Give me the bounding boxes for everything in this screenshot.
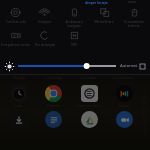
button[interactable]: MirrorShare [89, 7, 119, 24]
button[interactable]: Drive [74, 111, 104, 128]
button[interactable]: Nu deranjaţi [30, 30, 59, 47]
staticText: Confort ochi [6, 19, 26, 24]
button[interactable]: Documente [38, 111, 68, 128]
other: Economisire baterie [129, 7, 140, 18]
staticText: Economisire baterie [119, 19, 149, 28]
button[interactable]: Chrome [38, 85, 68, 108]
other: NFC [69, 30, 80, 41]
button[interactable]: Descărcări [3, 111, 33, 128]
staticText: Automat [120, 63, 138, 69]
staticText: Cameră foto [108, 75, 138, 80]
staticText: Înregistrare ecran [1, 42, 30, 47]
button[interactable]: Înregistrare ecran [1, 30, 30, 47]
button[interactable]: Ambisoare navigaţei [59, 7, 89, 28]
other: Ambisoare navigaţei [69, 7, 80, 18]
button[interactable]: NFC [59, 30, 89, 47]
button[interactable]: Automat [120, 63, 145, 69]
staticText: MirrorShare [94, 19, 114, 24]
staticText: Ambisoare navigaţei [59, 19, 89, 28]
button[interactable]: Economisire baterie [119, 7, 149, 28]
button[interactable]: Ceas [3, 85, 33, 108]
staticText: NFC [71, 42, 78, 47]
staticText: ecran [128, 0, 137, 4]
button[interactable]: Copie de rezer… [74, 85, 104, 108]
other: Nu deranjaţi [39, 30, 50, 41]
button[interactable]: Duo [109, 111, 139, 128]
staticText: Hotspot [38, 19, 51, 24]
other: Hotspot [39, 7, 50, 18]
button[interactable]: Hotspot [30, 7, 59, 24]
button[interactable] [18, 61, 116, 71]
staticText: despre locație [85, 0, 108, 5]
other: Luminozitate [5, 62, 14, 71]
button[interactable]: Deezer [109, 85, 139, 108]
button[interactable]: Confort ochi [1, 7, 30, 24]
other: MirrorShare [99, 7, 110, 18]
other: Înregistrare ecran [10, 30, 21, 41]
staticText: Nu deranjaţi [35, 42, 55, 47]
other: Confort ochi [10, 7, 21, 18]
